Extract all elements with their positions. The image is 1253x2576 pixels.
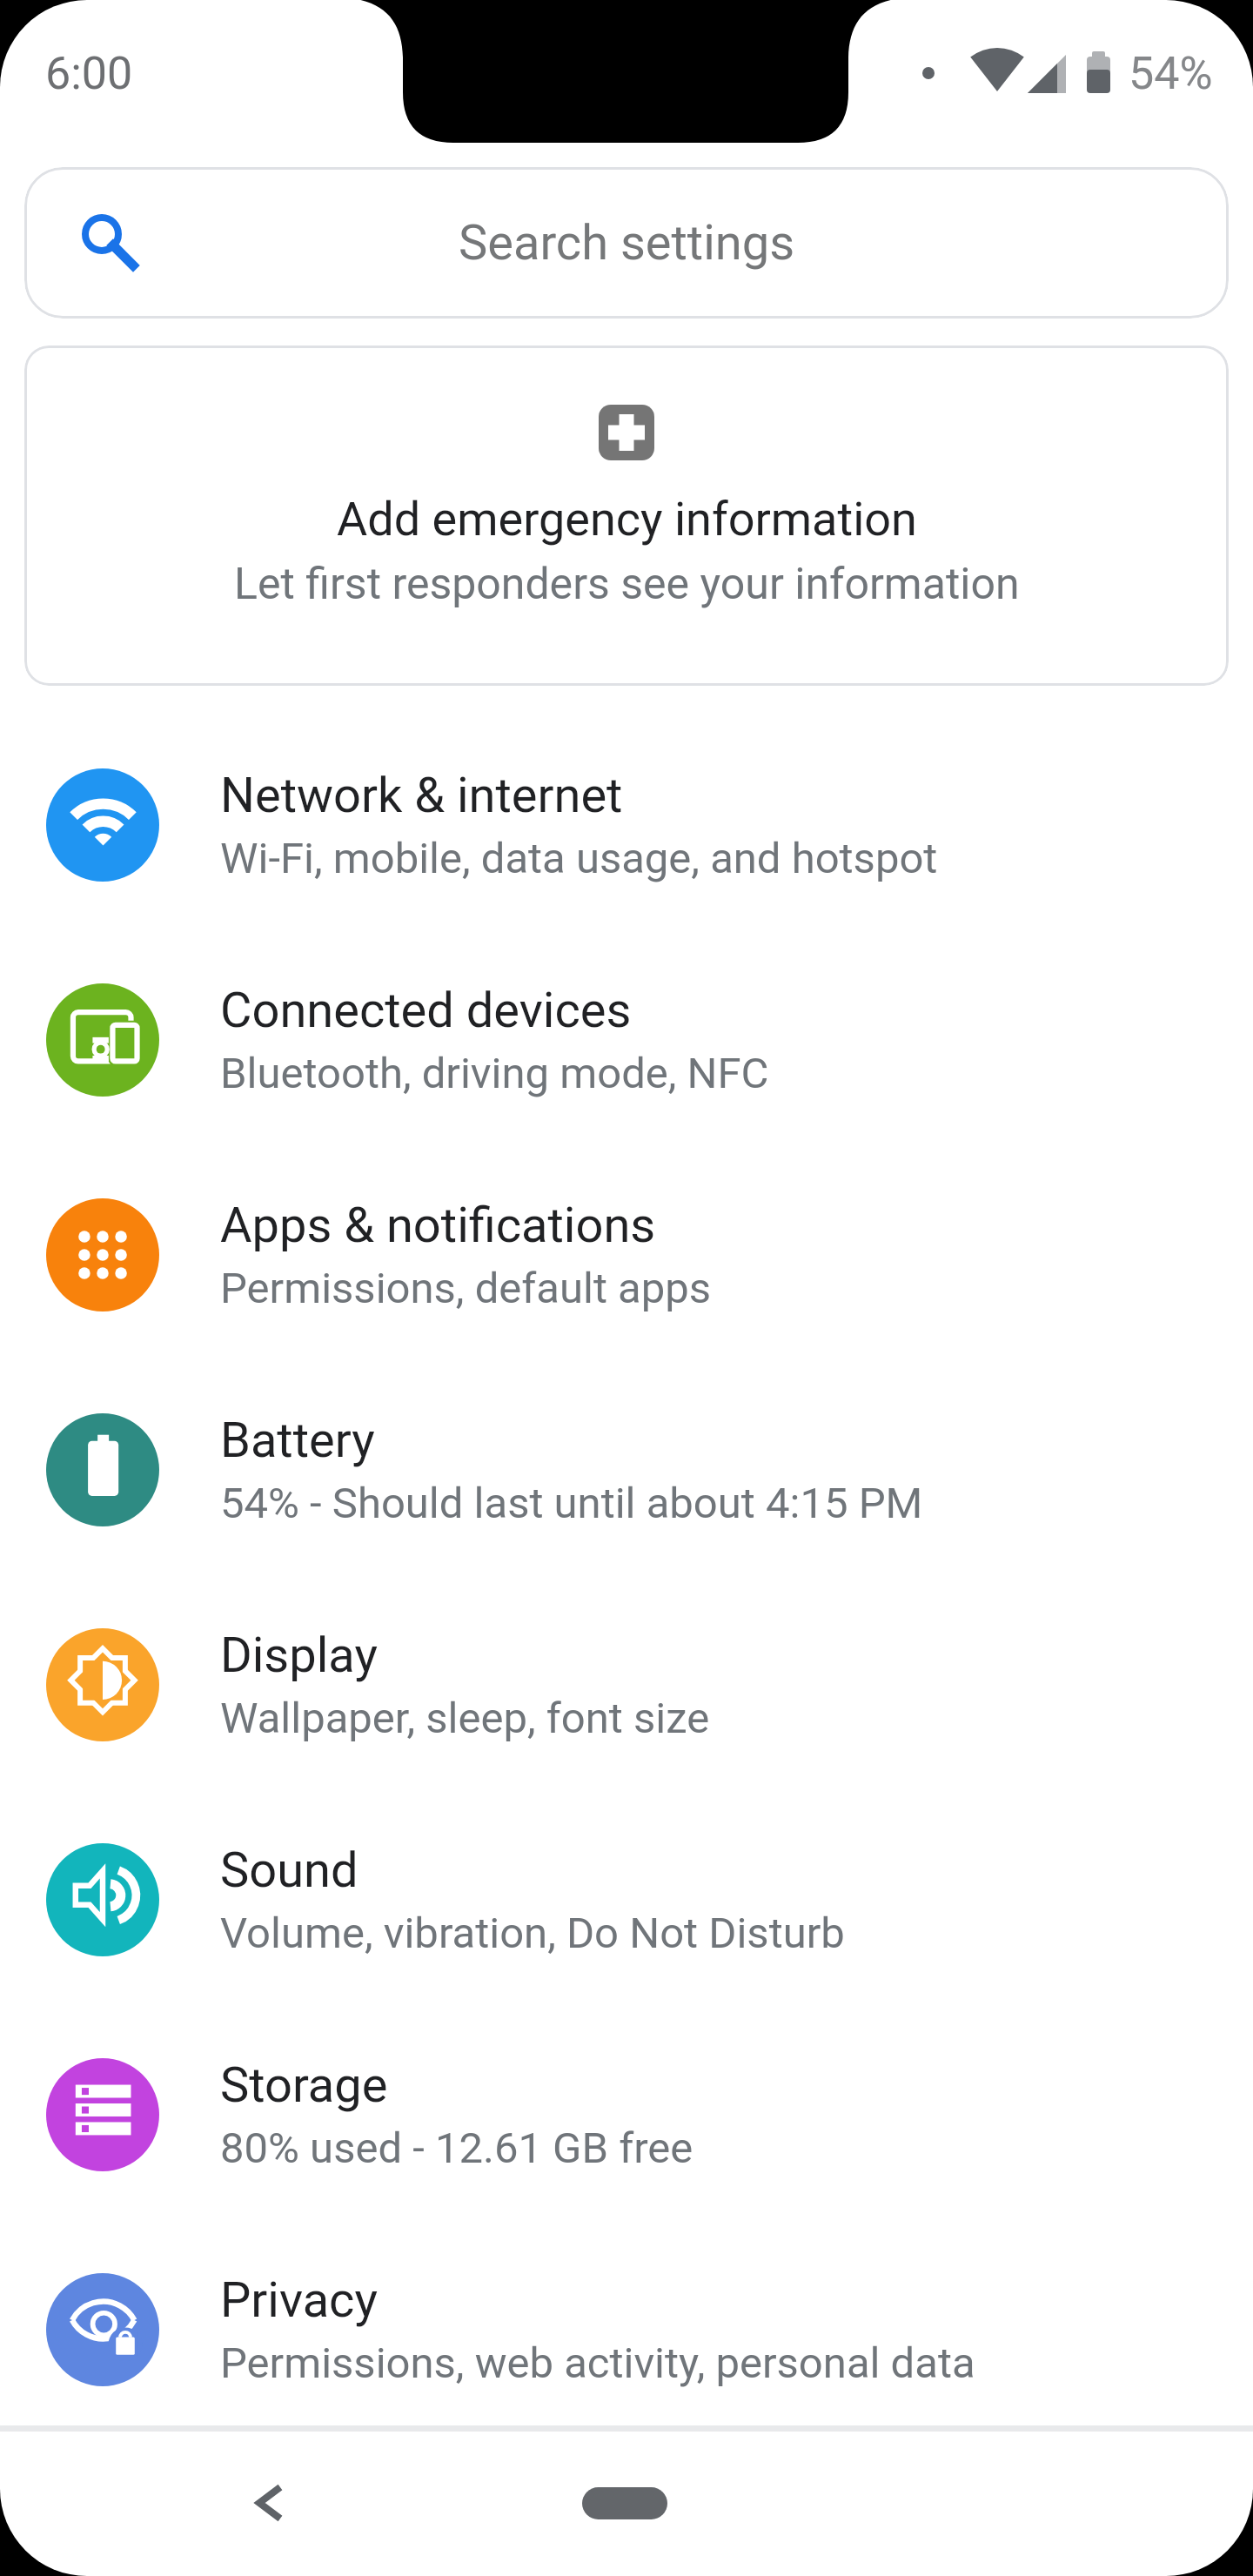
- button[interactable]: [248, 2482, 300, 2534]
- button[interactable]: Sound: [0, 1792, 1253, 2007]
- staticText: Wallpaper, sleep, font size: [220, 1694, 710, 1743]
- button[interactable]: Add emergency information: [24, 345, 1229, 686]
- staticText: Wi-Fi, mobile, data usage, and hotspot: [220, 834, 938, 883]
- staticText: Privacy: [220, 2271, 378, 2329]
- staticText: Storage: [220, 2056, 388, 2114]
- staticText: 54%: [1129, 47, 1213, 100]
- staticText: 54% - Should last until about 4:15 PM: [220, 1479, 923, 1528]
- button[interactable]: Battery: [0, 1362, 1253, 1577]
- button[interactable]: Privacy: [0, 2222, 1253, 2437]
- staticText: Connected devices: [220, 982, 632, 1039]
- staticText: Permissions, default apps: [220, 1264, 712, 1313]
- button[interactable]: Display: [0, 1577, 1253, 1792]
- staticText: Apps & notifications: [220, 1197, 656, 1254]
- button[interactable]: Storage: [0, 2007, 1253, 2222]
- button[interactable]: Connected devices: [0, 932, 1253, 1147]
- staticText: Battery: [220, 1412, 375, 1469]
- staticText: Network & internet: [220, 767, 623, 824]
- button[interactable]: Apps & notifications: [0, 1147, 1253, 1362]
- staticText: 6:00: [45, 47, 133, 100]
- staticText: Search settings: [459, 214, 795, 272]
- button[interactable]: Network & internet: [0, 717, 1253, 932]
- button[interactable]: [582, 2487, 667, 2519]
- staticText: 80% used - 12.61 GB free: [220, 2123, 694, 2173]
- staticText: Display: [220, 1627, 378, 1684]
- staticText: Bluetooth, driving mode, NFC: [220, 1049, 769, 1098]
- staticText: Sound: [220, 1841, 358, 1899]
- staticText: Permissions, web activity, personal data: [220, 2338, 975, 2388]
- staticText: Let first responders see your informatio…: [234, 559, 1020, 610]
- staticText: Add emergency information: [337, 492, 917, 547]
- button[interactable]: Search settings: [24, 167, 1229, 319]
- staticText: Volume, vibration, Do Not Disturb: [220, 1909, 845, 1958]
